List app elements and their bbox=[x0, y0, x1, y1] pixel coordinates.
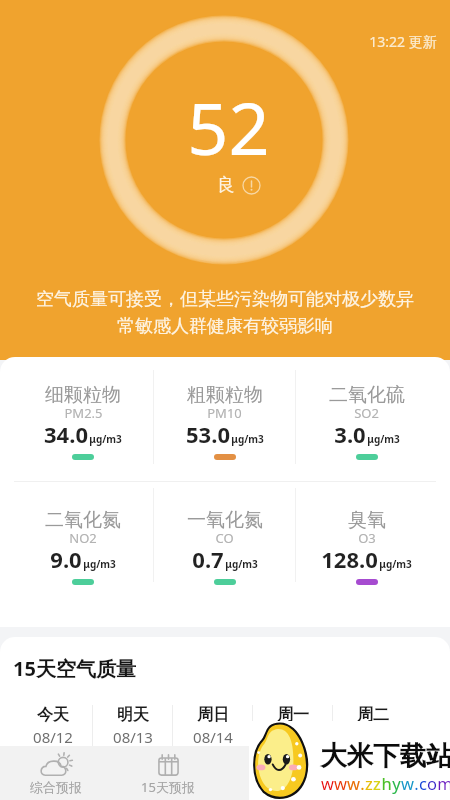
other: 综合预报 bbox=[40, 755, 73, 777]
staticText: y bbox=[392, 772, 401, 794]
staticText: 周日 bbox=[197, 705, 229, 725]
staticText: w bbox=[321, 772, 334, 794]
button[interactable]: 细颗粒物 bbox=[13, 383, 153, 461]
staticText: 细颗粒物 bbox=[45, 383, 121, 407]
other: 生活指数 bbox=[377, 755, 410, 777]
staticText: μg/m3 bbox=[225, 557, 258, 571]
staticText: μg/m3 bbox=[367, 432, 400, 446]
staticText: o bbox=[427, 772, 437, 794]
staticText: 生活指数 bbox=[368, 779, 420, 795]
staticText: 15天预报 bbox=[141, 778, 195, 796]
staticText: 周二 bbox=[357, 705, 389, 725]
button[interactable]: 二氧化氮 bbox=[13, 508, 153, 586]
button[interactable]: 空气质量 bbox=[224, 746, 337, 800]
staticText: 13:22 更新 bbox=[369, 32, 437, 51]
staticText: μg/m3 bbox=[379, 557, 412, 571]
other: 15天预报 bbox=[152, 754, 185, 776]
staticText: h bbox=[381, 772, 392, 794]
staticText: z bbox=[373, 772, 381, 794]
staticText: . bbox=[360, 772, 365, 794]
button[interactable]: 综合预报 bbox=[0, 746, 112, 800]
button[interactable]: 周日 bbox=[173, 705, 252, 747]
staticText: 大米下载站 bbox=[320, 739, 450, 772]
button[interactable]: 一氧化氮 bbox=[154, 508, 295, 586]
staticText: 常敏感人群健康有较弱影响 bbox=[117, 315, 333, 338]
staticText: 粗颗粒物 bbox=[187, 383, 263, 407]
staticText: c bbox=[419, 772, 427, 794]
staticText: 今天 bbox=[37, 705, 69, 725]
staticText: 15天空气质量 bbox=[13, 655, 136, 682]
button[interactable]: 明天 bbox=[93, 705, 172, 747]
staticText: 08/16 bbox=[353, 727, 393, 747]
staticText: 08/12 bbox=[33, 727, 73, 747]
staticText: μg/m3 bbox=[231, 432, 264, 446]
staticText: w bbox=[401, 772, 414, 794]
staticText: μg/m3 bbox=[83, 557, 116, 571]
staticText: NO2 bbox=[69, 529, 97, 547]
staticText: O3 bbox=[358, 529, 376, 547]
staticText: 52 bbox=[187, 78, 270, 176]
staticText: 08/15 bbox=[273, 727, 313, 747]
staticText: 二氧化硫 bbox=[329, 383, 405, 407]
button[interactable]: 今天 bbox=[13, 705, 92, 747]
button[interactable]: 粗颗粒物 bbox=[154, 383, 295, 461]
staticText: 综合预报 bbox=[30, 779, 82, 795]
staticText: 二氧化氮 bbox=[45, 508, 121, 532]
staticText: 0.7 bbox=[192, 544, 224, 574]
staticText: 空气质量可接受，但某些污染物可能对极少数异 bbox=[36, 288, 414, 311]
staticText: 3.0 bbox=[334, 419, 366, 449]
staticText: 08/13 bbox=[113, 727, 153, 747]
staticText: 明天 bbox=[117, 705, 149, 725]
staticText: 128.0 bbox=[321, 544, 378, 574]
staticText: m bbox=[437, 772, 450, 794]
button[interactable]: 生活指数 bbox=[337, 746, 450, 800]
other: 空气质量 bbox=[264, 755, 297, 777]
staticText: 34.0 bbox=[44, 419, 88, 449]
staticText: 臭氧 bbox=[348, 508, 386, 532]
staticText: w bbox=[334, 772, 347, 794]
staticText: . bbox=[414, 772, 419, 794]
staticText: 空气质量 bbox=[255, 779, 307, 795]
other: 空气质量说明 bbox=[242, 176, 261, 195]
staticText: 良 bbox=[217, 174, 235, 197]
staticText: PM10 bbox=[207, 404, 242, 422]
staticText: 9.0 bbox=[50, 544, 82, 574]
staticText: PM2.5 bbox=[64, 404, 103, 422]
staticText: CO bbox=[215, 529, 234, 547]
staticText: z bbox=[365, 772, 373, 794]
button[interactable]: 15天预报 bbox=[112, 746, 224, 800]
staticText: 08/14 bbox=[193, 727, 233, 747]
button[interactable]: 周二 bbox=[333, 705, 412, 747]
staticText: 53.0 bbox=[186, 419, 230, 449]
staticText: 周一 bbox=[277, 705, 309, 725]
button[interactable]: 臭氧 bbox=[296, 508, 437, 586]
staticText: w bbox=[347, 772, 360, 794]
staticText: 一氧化氮 bbox=[187, 508, 263, 532]
staticText: μg/m3 bbox=[89, 432, 122, 446]
staticText: SO2 bbox=[354, 404, 379, 422]
button[interactable]: 二氧化硫 bbox=[296, 383, 437, 461]
button[interactable]: 周一 bbox=[253, 705, 332, 747]
